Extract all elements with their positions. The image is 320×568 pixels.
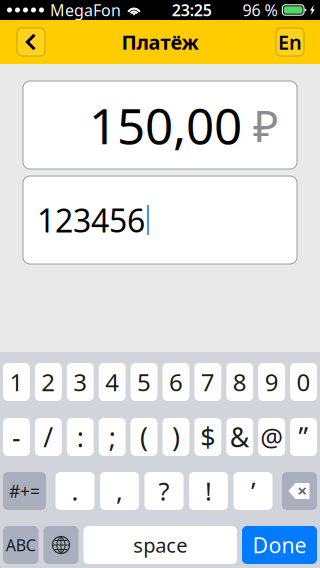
button[interactable]: 7 (194, 363, 221, 401)
button[interactable]: ” (290, 418, 317, 456)
staticText: 3 (73, 366, 87, 398)
button[interactable]: @ (258, 418, 285, 456)
staticText: En (278, 29, 302, 55)
staticText: ! (205, 474, 212, 508)
staticText: : (77, 419, 84, 455)
button[interactable]: Done (242, 526, 317, 564)
staticText: - (12, 419, 21, 455)
button[interactable]: ? (144, 472, 183, 510)
button[interactable]: , (100, 472, 139, 510)
button[interactable]: 1 (3, 363, 30, 401)
staticText: $ (200, 419, 215, 455)
staticText: ” (299, 419, 309, 455)
button[interactable]: 4 (99, 363, 126, 401)
staticText: MegaFon (50, 0, 121, 21)
staticText: ? (158, 474, 169, 508)
staticText: ; (109, 419, 116, 455)
staticText: . (71, 474, 78, 508)
staticText: 4 (105, 366, 119, 398)
button[interactable]: Back (17, 28, 45, 56)
staticText: #+= (9, 479, 40, 502)
staticText: 2 (41, 366, 55, 398)
staticText: ( (140, 419, 148, 455)
staticText: , (116, 474, 123, 508)
staticText: 9 (265, 366, 279, 398)
button[interactable]: En (276, 28, 304, 56)
staticText: & (230, 419, 250, 455)
button[interactable]: 5 (131, 363, 157, 401)
button[interactable]: / (35, 418, 62, 456)
button[interactable]: $ (194, 418, 221, 456)
staticText: 7 (201, 366, 215, 398)
button[interactable]: 2 (35, 363, 62, 401)
staticText: ’ (251, 474, 255, 508)
button[interactable]: ; (99, 418, 126, 456)
button[interactable]: ABC (3, 526, 38, 564)
staticText: 150,00 (89, 92, 242, 158)
button[interactable]: 9 (258, 363, 285, 401)
button[interactable]: & (226, 418, 253, 456)
button[interactable]: : (67, 418, 94, 456)
staticText: 6 (169, 366, 183, 398)
button[interactable]: 8 (226, 363, 253, 401)
staticText: 96 % (242, 0, 277, 21)
staticText: Платёж (121, 29, 198, 55)
button[interactable]: ( (131, 418, 157, 456)
staticText: 1 (9, 366, 23, 398)
button[interactable]: 0 (290, 363, 317, 401)
button[interactable]: - (3, 418, 30, 456)
staticText: @ (260, 420, 283, 454)
staticText: ) (172, 419, 180, 455)
staticText: 0 (297, 366, 311, 398)
staticText: 123456 (37, 199, 145, 241)
staticText: space (133, 532, 187, 558)
button[interactable]: ’ (233, 472, 272, 510)
button[interactable]: 6 (162, 363, 189, 401)
button[interactable]: #+= (3, 472, 46, 510)
staticText: 5 (137, 366, 151, 398)
button[interactable]: Delete (282, 472, 317, 510)
button[interactable]: . (55, 472, 94, 510)
staticText: Done (252, 531, 306, 559)
button[interactable]: space (83, 526, 237, 564)
staticText: 23:25 (172, 0, 212, 21)
staticText: ABC (6, 534, 36, 556)
staticText: 8 (233, 366, 247, 398)
button[interactable]: ) (162, 418, 189, 456)
button[interactable]: ! (189, 472, 228, 510)
button[interactable]: 3 (67, 363, 94, 401)
staticText: ₽ (253, 96, 279, 154)
button[interactable]: Next keyboard (43, 526, 78, 564)
staticText: / (43, 419, 53, 455)
